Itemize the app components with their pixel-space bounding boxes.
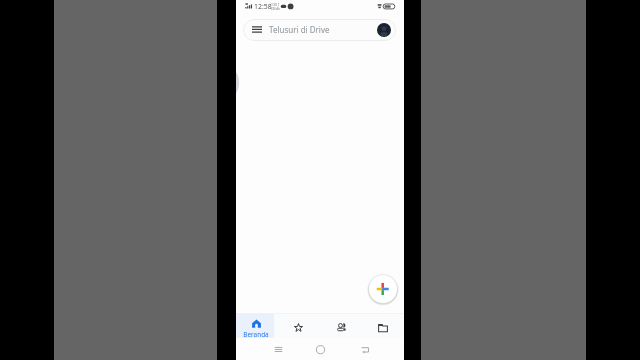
button[interactable]: Home: [309, 338, 331, 360]
button[interactable]: Starred: [284, 313, 312, 338]
button[interactable]: Account profile: [377, 23, 391, 37]
button[interactable]: Beranda: [236, 313, 274, 338]
button[interactable]: Back: [353, 338, 375, 360]
staticText: 130,1: [271, 2, 280, 7]
button[interactable]: Files: [369, 313, 397, 338]
button[interactable]: Open navigation drawer: [243, 19, 396, 41]
button[interactable]: Shared with me: [327, 313, 355, 338]
staticText: Beranda: [243, 330, 269, 339]
button[interactable]: Recent apps: [267, 338, 289, 360]
button[interactable]: Create new: [369, 275, 397, 303]
staticText: KB/dtk: [271, 7, 281, 11]
staticText: 12:58: [254, 2, 272, 11]
staticText: Telusuri di Drive: [269, 24, 330, 35]
button[interactable]: Open navigation drawer: [252, 24, 262, 35]
